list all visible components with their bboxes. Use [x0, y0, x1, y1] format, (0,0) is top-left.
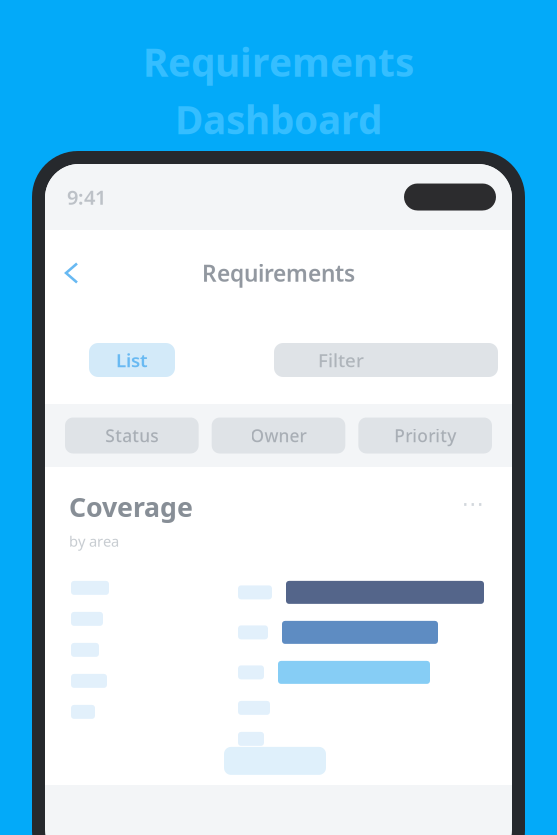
staticText: Filter	[318, 348, 364, 372]
button[interactable]: Owner	[212, 417, 345, 453]
button[interactable]: Filter	[274, 343, 498, 377]
button[interactable]: List	[89, 343, 175, 377]
staticText: Dashboard	[175, 93, 382, 145]
button[interactable]: Show more	[224, 747, 326, 775]
staticText: 9:41	[67, 184, 106, 210]
button[interactable]: More options	[458, 489, 488, 519]
button[interactable]: Back	[53, 252, 90, 293]
staticText: by area	[69, 531, 119, 551]
staticText: ⋯	[461, 491, 484, 517]
staticText: Requirements	[143, 36, 414, 87]
staticText: Status	[105, 424, 158, 447]
button[interactable]: Status	[65, 417, 199, 453]
button[interactable]: Priority	[358, 417, 492, 453]
staticText: Priority	[394, 424, 456, 447]
staticText: List	[116, 348, 148, 372]
staticText: Owner	[250, 424, 306, 447]
staticText: Coverage	[69, 489, 193, 524]
staticText: Requirements	[202, 258, 355, 288]
